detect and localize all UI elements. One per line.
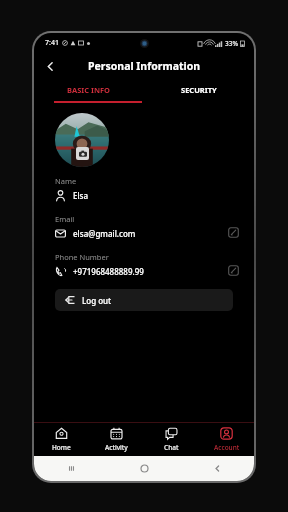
button[interactable]: Phone Number: [34, 252, 254, 277]
staticText: Log out: [82, 295, 112, 306]
button[interactable]: Edit email: [226, 225, 240, 239]
staticText: Personal Information: [88, 59, 201, 73]
button[interactable]: Chat: [144, 423, 199, 456]
staticText: 7:41: [45, 38, 59, 48]
staticText: 33%: [225, 39, 238, 48]
staticText: Elsa: [73, 190, 89, 201]
button[interactable]: BASIC INFO: [34, 79, 144, 101]
button[interactable]: Home: [108, 456, 181, 481]
button[interactable]: Email: [34, 214, 254, 239]
button[interactable]: Name: [34, 176, 254, 201]
staticText: elsa@gmail.com: [73, 228, 136, 239]
staticText: Activity: [105, 443, 128, 452]
button[interactable]: Back: [181, 456, 254, 481]
staticText: Phone Number: [55, 252, 109, 262]
button[interactable]: Back: [39, 55, 61, 77]
staticText: Name: [55, 176, 77, 186]
staticText: Home: [52, 443, 71, 452]
button[interactable]: Edit phone: [226, 263, 240, 277]
button[interactable]: Account: [199, 423, 254, 456]
button[interactable]: Recents: [34, 456, 108, 481]
staticText: Chat: [164, 443, 179, 452]
staticText: Email: [55, 214, 75, 224]
staticText: BASIC INFO: [67, 85, 111, 95]
staticText: SECURITY: [181, 85, 217, 95]
staticText: Account: [214, 443, 240, 452]
button[interactable]: Activity: [89, 423, 144, 456]
button[interactable]: Home: [34, 423, 89, 456]
button[interactable]: SECURITY: [144, 79, 254, 101]
button[interactable]: Change profile photo: [55, 113, 109, 167]
button[interactable]: Log out: [55, 289, 233, 311]
staticText: +971968488889.99: [73, 266, 144, 277]
